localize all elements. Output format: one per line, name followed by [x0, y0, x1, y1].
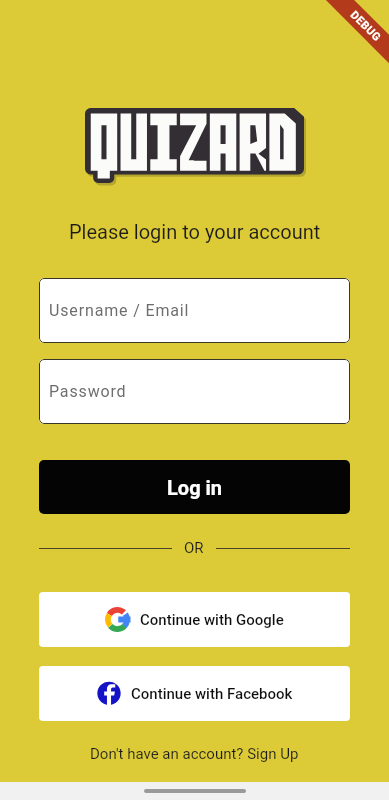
button[interactable]: Username / Email: [39, 278, 350, 343]
button[interactable]: Don't have an account? Sign Up: [90, 745, 299, 763]
button[interactable]: Password: [39, 359, 350, 424]
staticText: Continue with Facebook: [131, 685, 293, 703]
staticText: Username / Email: [49, 301, 190, 320]
staticText: DEBUG: [348, 8, 384, 44]
staticText: Password: [49, 382, 127, 401]
staticText: Log in: [167, 476, 223, 499]
staticText: Please login to your account: [69, 220, 321, 243]
staticText: Continue with Google: [140, 611, 284, 629]
button[interactable]: Continue with Facebook: [39, 666, 350, 721]
staticText: Don't have an account? Sign Up: [90, 745, 299, 763]
button[interactable]: Log in: [39, 460, 350, 514]
staticText: OR: [184, 539, 204, 557]
button[interactable]: Continue with Google: [39, 592, 350, 647]
